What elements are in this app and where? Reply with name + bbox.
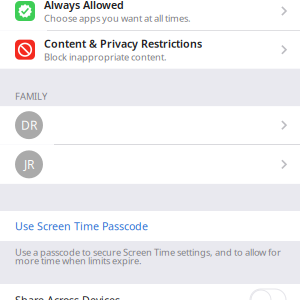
button[interactable]: DR	[0, 106, 300, 144]
staticText: Choose apps you want at all times.	[44, 12, 191, 24]
staticText: Always Allowed	[44, 0, 124, 12]
button[interactable]: Share Across Devices	[0, 284, 300, 300]
staticText: Use a passcode to secure Screen Time set…	[15, 246, 281, 258]
staticText: Share Across Devices	[15, 293, 120, 300]
staticText: FAMILY	[15, 90, 47, 102]
button[interactable]: JR	[0, 145, 300, 184]
staticText: Content & Privacy Restrictions	[44, 36, 202, 51]
staticText: Use Screen Time Passcode	[15, 219, 148, 233]
staticText: DR	[21, 117, 37, 133]
button[interactable]: FAMILY	[15, 90, 47, 102]
staticText: more time when limits expire.	[15, 254, 142, 267]
staticText: Block inappropriate content.	[44, 51, 167, 63]
staticText: JR	[24, 156, 34, 172]
button[interactable]: Use Screen Time Passcode	[0, 211, 300, 241]
button[interactable]: Always Allowed	[0, 0, 300, 30]
button[interactable]: Content & Privacy Restrictions	[0, 31, 300, 69]
